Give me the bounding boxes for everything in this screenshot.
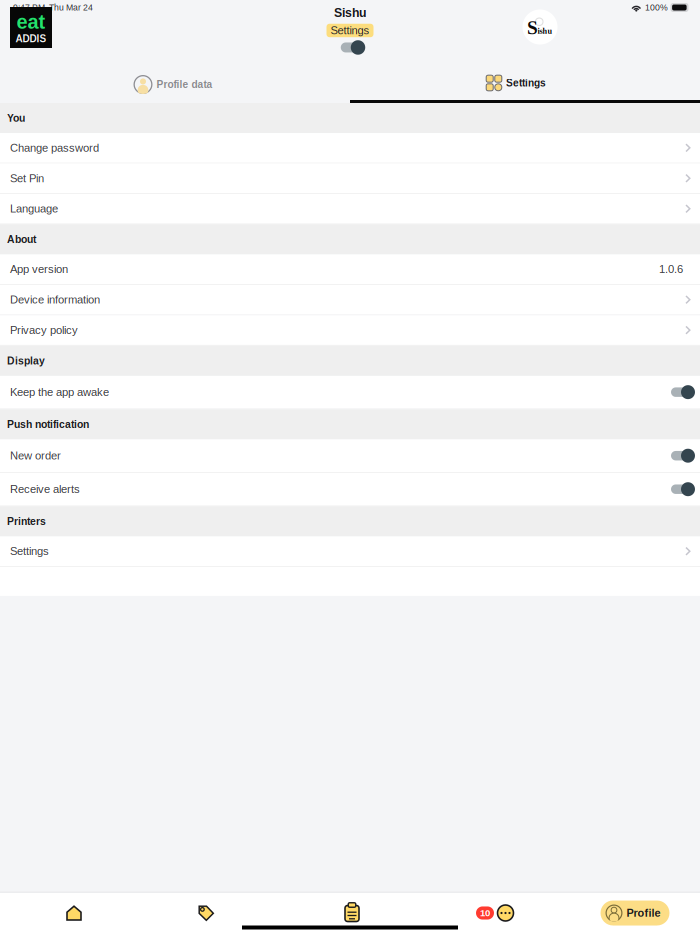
staticText: Sishu — [334, 6, 366, 20]
button[interactable]: Keep the app awake — [0, 376, 700, 409]
staticText: You — [7, 112, 25, 124]
button[interactable]: Privacy policy — [0, 315, 700, 346]
button[interactable]: Profile — [560, 893, 700, 934]
button[interactable]: Settings — [0, 536, 700, 567]
staticText: 1.0.6 — [659, 263, 683, 275]
staticText: Profile — [626, 907, 660, 919]
button[interactable]: Messages — [420, 893, 560, 934]
staticText: Language — [10, 202, 58, 215]
staticText: About — [7, 234, 36, 245]
staticText: Keep the app awake — [10, 386, 109, 398]
button[interactable]: New order — [0, 439, 700, 473]
staticText: Receive alerts — [10, 483, 80, 495]
staticText: Thu Mar 24 — [49, 3, 93, 12]
staticText: Settings — [10, 545, 49, 557]
staticText: Display — [7, 355, 45, 367]
staticText: eat — [16, 11, 45, 33]
staticText: 100% — [645, 3, 668, 12]
staticText: ishu — [537, 26, 552, 36]
button[interactable]: Receive alerts — [0, 473, 700, 506]
button[interactable]: Device information — [0, 285, 700, 315]
button[interactable]: Offers — [140, 893, 280, 934]
staticText: Set Pin — [10, 172, 44, 184]
button[interactable]: Settings — [350, 66, 700, 103]
staticText: Change password — [10, 142, 99, 154]
staticText: 10 — [480, 908, 490, 918]
staticText: Push notification — [7, 419, 89, 430]
staticText: Settings — [330, 24, 369, 37]
staticText: Profile data — [156, 79, 212, 90]
staticText: App version — [10, 263, 68, 275]
staticText: Privacy policy — [10, 324, 78, 336]
staticText: ADDIS — [15, 33, 46, 44]
button[interactable]: Profile data — [0, 66, 350, 103]
button[interactable]: Home — [0, 893, 140, 934]
button[interactable]: Language — [0, 194, 700, 224]
button[interactable]: Set Pin — [0, 163, 700, 194]
button[interactable]: Orders — [280, 893, 420, 934]
staticText: S — [527, 17, 538, 38]
staticText: Printers — [7, 516, 46, 527]
button[interactable]: App version — [0, 254, 700, 285]
staticText: 9:47 PM — [13, 3, 45, 12]
button[interactable]: Change password — [0, 133, 700, 163]
staticText: Device information — [10, 293, 100, 306]
staticText: Settings — [506, 77, 546, 89]
staticText: New order — [10, 449, 61, 462]
